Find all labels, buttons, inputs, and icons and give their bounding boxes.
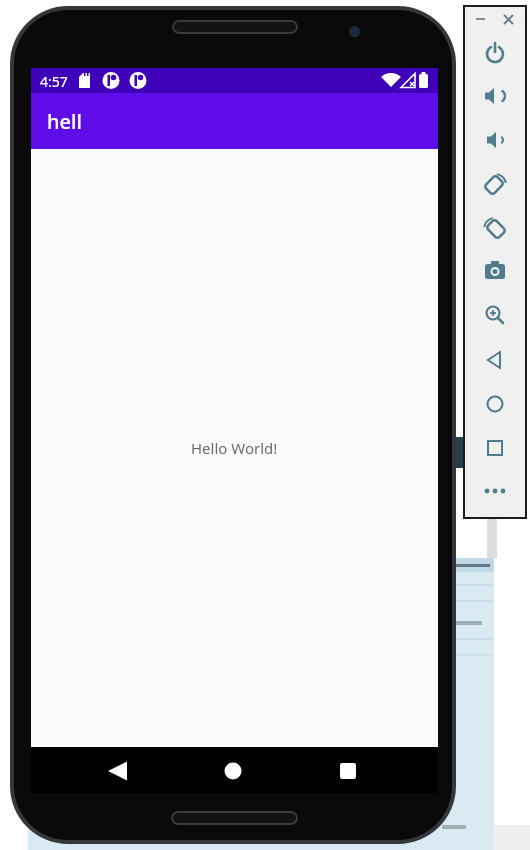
button[interactable] bbox=[477, 166, 513, 202]
button[interactable] bbox=[477, 253, 513, 289]
button[interactable] bbox=[477, 122, 513, 158]
button[interactable] bbox=[97, 751, 137, 791]
button[interactable] bbox=[477, 297, 513, 333]
button[interactable] bbox=[477, 78, 513, 114]
button[interactable] bbox=[477, 473, 513, 509]
staticText: Hello World! bbox=[191, 438, 278, 458]
button[interactable] bbox=[477, 210, 513, 246]
button[interactable] bbox=[328, 751, 368, 791]
button[interactable]: hell bbox=[31, 93, 438, 149]
button[interactable] bbox=[477, 430, 513, 466]
button[interactable] bbox=[477, 35, 513, 71]
button[interactable] bbox=[477, 386, 513, 422]
staticText: 4:57 bbox=[40, 72, 68, 91]
button[interactable] bbox=[213, 751, 253, 791]
button[interactable] bbox=[477, 342, 513, 378]
staticText: hell bbox=[47, 108, 82, 135]
